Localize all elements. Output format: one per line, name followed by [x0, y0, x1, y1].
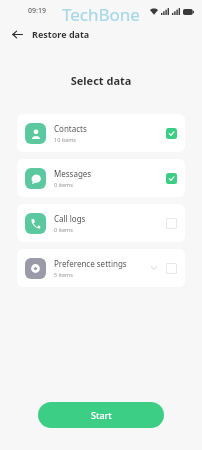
staticText: 5 items	[54, 271, 73, 278]
staticText: 10 items	[54, 136, 77, 143]
staticText: 09:19	[28, 6, 46, 16]
staticText: Call logs	[54, 213, 86, 224]
staticText: TechBone	[62, 3, 140, 26]
button[interactable]: Contacts	[17, 114, 185, 152]
button[interactable]: Unchecked	[166, 218, 177, 229]
button[interactable]: Checked	[166, 173, 177, 184]
staticText: 0 items	[54, 181, 73, 188]
staticText: Messages	[54, 168, 92, 179]
button[interactable]: Checked	[166, 128, 177, 139]
button[interactable]: Start	[38, 402, 164, 428]
button[interactable]: Expand	[147, 261, 161, 275]
staticText: 0 items	[54, 226, 73, 233]
staticText: Restore data	[32, 28, 90, 40]
button[interactable]: Preference settings	[17, 249, 185, 287]
button[interactable]: Unchecked	[166, 263, 177, 274]
button[interactable]: Messages	[17, 159, 185, 197]
staticText: Start	[91, 409, 112, 421]
button[interactable]: Back	[6, 23, 28, 45]
staticText: Preference settings	[54, 258, 127, 269]
button[interactable]: Call logs	[17, 204, 185, 242]
staticText: Contacts	[54, 123, 87, 134]
staticText: Select data	[0, 73, 202, 88]
